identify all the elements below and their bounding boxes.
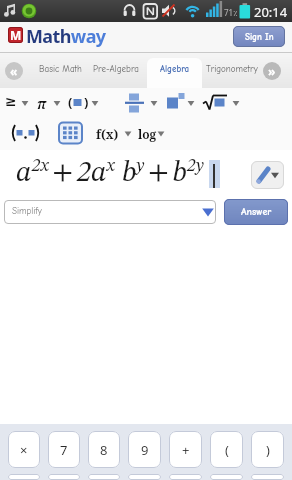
staticText: «	[10, 63, 18, 79]
staticText: )	[266, 441, 270, 459]
button[interactable]: 7	[48, 431, 80, 468]
button[interactable]: ≥	[5, 93, 17, 109]
button[interactable]: »	[263, 62, 281, 80]
staticText: (	[68, 93, 73, 111]
button[interactable]: 8	[88, 431, 120, 468]
staticText: 8	[100, 441, 108, 459]
button[interactable]: +	[169, 431, 202, 468]
staticText: a2x + 2ax by + b2y	[16, 157, 204, 188]
staticText: Mathway	[26, 24, 106, 49]
button[interactable]: Sign In	[233, 26, 285, 47]
button[interactable]: ×	[8, 431, 40, 468]
button[interactable]: Answer	[224, 199, 288, 225]
staticText: »	[268, 63, 276, 79]
staticText: +	[182, 441, 190, 459]
staticText: 7	[60, 441, 68, 459]
button[interactable]: π	[37, 94, 47, 113]
staticText: 20:14	[254, 3, 288, 21]
button[interactable]: Pre-Algebra	[93, 64, 139, 74]
button[interactable]: Simplify	[4, 200, 216, 224]
button[interactable]: «	[5, 62, 23, 80]
staticText: Simplify	[12, 206, 42, 216]
button[interactable]: log	[138, 126, 157, 142]
staticText: )	[84, 93, 89, 111]
button[interactable]: 9	[128, 431, 161, 468]
staticText: M	[10, 27, 22, 43]
staticText: 71٪	[224, 7, 238, 18]
button[interactable]: Basic Math	[39, 64, 82, 74]
staticText: 9	[141, 441, 149, 459]
button[interactable]: )	[251, 431, 284, 468]
staticText: Answer	[241, 206, 272, 218]
button[interactable]: (	[210, 431, 243, 468]
staticText: Algebra	[160, 64, 190, 74]
staticText: Sign In	[245, 32, 274, 42]
staticText: ×	[20, 441, 28, 459]
button[interactable]	[251, 161, 284, 189]
button[interactable]: f(x)	[96, 126, 119, 142]
staticText: (	[225, 441, 229, 459]
button[interactable]: Algebra	[147, 58, 202, 88]
button[interactable]: Trigonometry	[206, 64, 258, 74]
